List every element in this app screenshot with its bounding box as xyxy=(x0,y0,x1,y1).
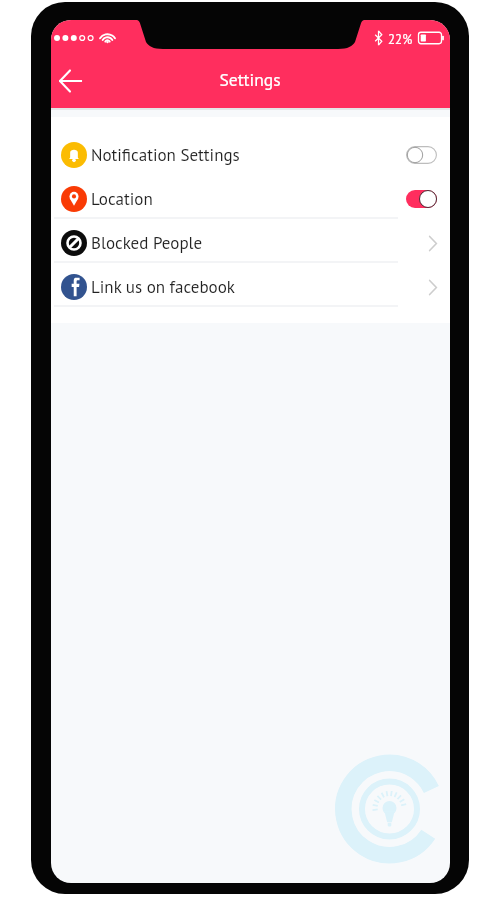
staticText: Location xyxy=(91,188,153,210)
staticText: Link us on facebook xyxy=(91,276,235,298)
button[interactable]: Open xyxy=(429,280,437,295)
button[interactable]: Notification Settings xyxy=(51,133,450,177)
staticText: Settings xyxy=(219,68,281,91)
button[interactable]: Blocked People xyxy=(51,221,450,265)
button[interactable]: Link us on facebook xyxy=(51,265,450,309)
staticText: 22% xyxy=(388,31,413,48)
staticText: Blocked People xyxy=(91,232,203,254)
button[interactable]: Switch off xyxy=(406,146,437,164)
button[interactable]: Back xyxy=(51,61,91,101)
button[interactable]: Open xyxy=(429,236,437,251)
button[interactable]: Switch on xyxy=(406,190,437,208)
button[interactable]: Location xyxy=(51,177,450,221)
staticText: Notification Settings xyxy=(91,144,240,166)
